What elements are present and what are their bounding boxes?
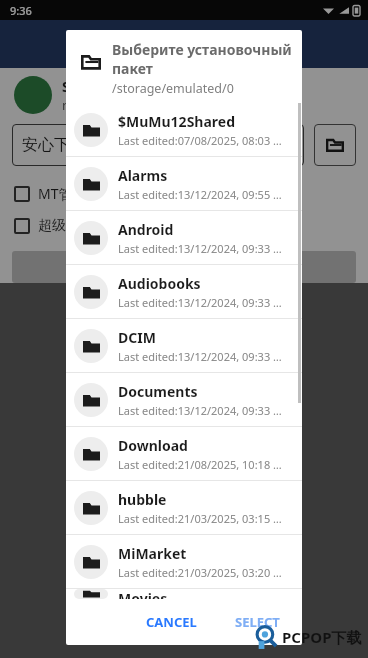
- staticText: 9:36: [10, 3, 32, 18]
- staticText: Last edited:13/12/2024, 09:33 上午: [118, 241, 294, 256]
- staticText: Last edited:21/08/2025, 10:18 上午: [118, 457, 294, 472]
- staticText: hubble: [118, 490, 167, 509]
- button[interactable]: MiMarket: [66, 535, 302, 588]
- button[interactable]: Browse folders: [314, 124, 356, 166]
- staticText: Last edited:13/12/2024, 09:33 上午: [118, 295, 294, 310]
- staticText: Alarms: [118, 166, 168, 185]
- staticText: MiMarket: [118, 544, 187, 563]
- staticText: Self: [62, 77, 88, 96]
- staticText: $MuMu12Shared: [118, 112, 236, 131]
- staticText: DCIM: [118, 328, 156, 347]
- button[interactable]: SELECT: [225, 607, 290, 637]
- button[interactable]: DCIM: [66, 319, 302, 372]
- staticText: Last edited:13/12/2024, 09:33 上午: [118, 403, 294, 418]
- button[interactable]: hubble: [66, 481, 302, 534]
- button[interactable]: MT管理器: [14, 184, 368, 203]
- button[interactable]: Audiobooks: [66, 265, 302, 318]
- button[interactable]: 超级去广告: [14, 217, 368, 235]
- staticText: Android: [118, 220, 174, 239]
- button[interactable]: $MuMu12Shared: [66, 103, 302, 156]
- staticText: Download: [118, 436, 188, 455]
- staticText: Last edited:21/03/2025, 03:20 下午: [118, 565, 294, 580]
- staticText: Documents: [118, 382, 198, 401]
- staticText: /storage/emulated/0: [112, 80, 234, 97]
- staticText: CANCEL: [146, 613, 197, 631]
- staticText: Last edited:07/08/2025, 08:03 上午: [118, 133, 294, 148]
- staticText: PCPOP下载: [282, 627, 362, 647]
- staticText: MT管理器: [38, 184, 101, 203]
- button[interactable]: Movies: [66, 589, 302, 599]
- button[interactable]: Documents: [66, 373, 302, 426]
- staticText: 安心下载: [22, 135, 86, 155]
- staticText: Last edited:21/03/2025, 03:15 下午: [118, 511, 294, 526]
- button[interactable]: CANCEL: [136, 607, 207, 637]
- staticText: Last edited:13/12/2024, 09:33 上午: [118, 349, 294, 364]
- staticText: Movies: [118, 589, 168, 599]
- button[interactable]: Alarms: [66, 157, 302, 210]
- staticText: Last edited:13/12/2024, 09:55 上午: [118, 187, 294, 202]
- staticText: SELECT: [235, 613, 280, 631]
- button[interactable]: Download: [66, 427, 302, 480]
- staticText: non: [62, 96, 86, 114]
- staticText: 超级去广告: [38, 217, 108, 235]
- staticText: Audiobooks: [118, 274, 201, 293]
- button[interactable]: Android: [66, 211, 302, 264]
- staticText: Выберите установочный пакет: [112, 40, 292, 78]
